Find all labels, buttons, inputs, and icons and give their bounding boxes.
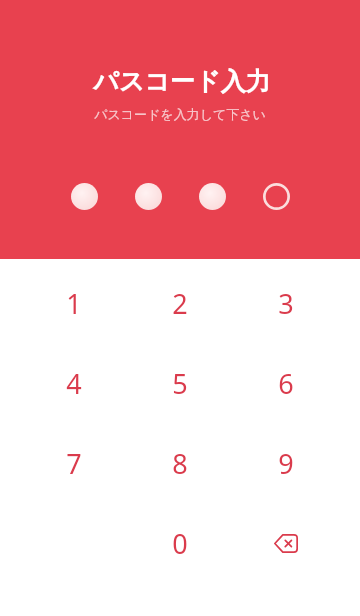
staticText: 1: [66, 285, 82, 322]
button[interactable]: 4: [21, 343, 127, 423]
staticText: 0: [172, 525, 188, 562]
staticText: 8: [172, 445, 188, 482]
button[interactable]: Delete: [233, 503, 339, 583]
staticText: パスコード入力: [93, 66, 271, 97]
button[interactable]: 8: [127, 423, 233, 503]
staticText: 9: [278, 445, 294, 482]
button[interactable]: 3: [233, 263, 339, 343]
staticText: パスコードを入力して下さい: [94, 106, 266, 122]
staticText: 7: [66, 445, 82, 482]
button[interactable]: 0: [127, 503, 233, 583]
staticText: 5: [172, 365, 188, 402]
button[interactable]: 6: [233, 343, 339, 423]
button[interactable]: 9: [233, 423, 339, 503]
staticText: 6: [278, 365, 294, 402]
button[interactable]: 2: [127, 263, 233, 343]
button[interactable]: 1: [21, 263, 127, 343]
staticText: 3: [278, 285, 294, 322]
staticText: 2: [172, 285, 188, 322]
button[interactable]: 7: [21, 423, 127, 503]
button[interactable]: 5: [127, 343, 233, 423]
staticText: 4: [66, 365, 82, 402]
